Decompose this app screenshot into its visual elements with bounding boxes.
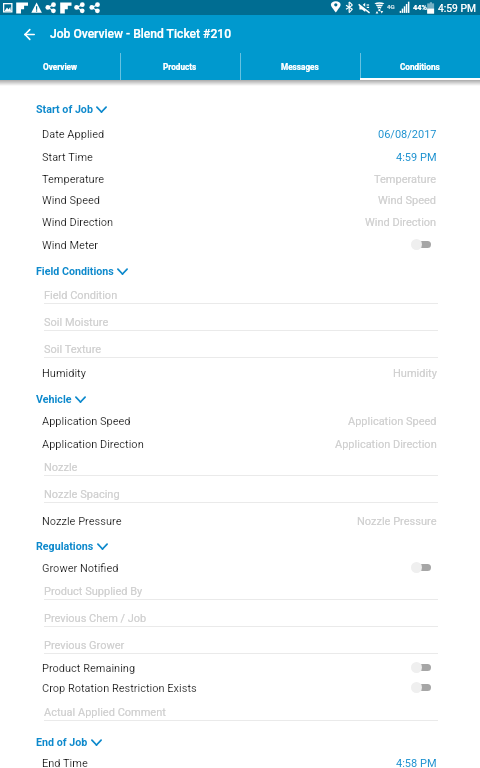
button[interactable]: Overview xyxy=(0,53,120,80)
staticText: Messages xyxy=(281,62,319,72)
button[interactable]: Crop Rotation Restriction Exists xyxy=(0,678,480,698)
button[interactable]: Product Supplied By xyxy=(0,581,480,601)
button[interactable]: Start of Job xyxy=(30,98,115,120)
staticText: Date Applied xyxy=(42,128,105,141)
staticText: End of Job xyxy=(36,736,88,749)
staticText: Product Supplied By xyxy=(44,585,143,598)
staticText: Grower Notified xyxy=(42,562,119,575)
staticText: Soil Moisture xyxy=(44,316,109,329)
staticText: Humidity xyxy=(393,367,437,380)
staticText: Wind Meter xyxy=(42,239,99,252)
staticText: Humidity xyxy=(42,367,86,380)
button[interactable]: Messages xyxy=(240,53,360,80)
button[interactable]: Regulations xyxy=(30,535,116,557)
staticText: 44% xyxy=(413,3,427,12)
staticText: Actual Applied Comment xyxy=(44,706,166,719)
button[interactable]: Actual Applied Comment xyxy=(0,702,480,722)
button[interactable]: Previous Grower xyxy=(0,635,480,655)
staticText: Field Condition xyxy=(44,289,118,302)
button[interactable]: Field Condition xyxy=(0,285,480,305)
staticText: Application Speed xyxy=(42,415,131,428)
button[interactable]: End Time xyxy=(0,753,480,768)
staticText: Products xyxy=(163,62,197,72)
button[interactable]: Nozzle Spacing xyxy=(0,484,480,504)
staticText: Field Conditions xyxy=(36,265,114,278)
staticText: Job Overview - Blend Ticket #210 xyxy=(50,27,232,41)
button[interactable]: Vehicle xyxy=(30,388,94,410)
staticText: Application Speed xyxy=(348,415,437,428)
staticText: Nozzle Spacing xyxy=(44,488,120,501)
staticText: Wind Speed xyxy=(42,194,101,207)
staticText: Previous Chem / Job xyxy=(44,612,147,625)
staticText: Temperature xyxy=(374,173,437,186)
button[interactable]: End of Job xyxy=(30,731,110,753)
staticText: Overview xyxy=(43,62,77,72)
button[interactable]: Wind Direction xyxy=(0,212,480,232)
staticText: Wind Speed xyxy=(378,194,437,207)
button[interactable]: Temperature xyxy=(0,169,480,189)
button[interactable]: Previous Chem / Job xyxy=(0,608,480,628)
staticText: Soil Texture xyxy=(44,343,102,356)
staticText: Product Remaining xyxy=(42,662,136,675)
staticText: 4:59 PM xyxy=(438,2,476,14)
staticText: 4:58 PM xyxy=(396,757,437,768)
button[interactable]: Products xyxy=(120,53,240,80)
button[interactable]: Wind Speed xyxy=(0,190,480,210)
staticText: End Time xyxy=(42,757,88,768)
button[interactable]: Humidity xyxy=(0,363,480,383)
button[interactable]: Start Time xyxy=(0,147,480,167)
staticText: Wind Direction xyxy=(365,216,437,229)
button[interactable]: Application Speed xyxy=(0,411,480,431)
staticText: Application Direction xyxy=(335,438,437,451)
staticText: Previous Grower xyxy=(44,639,125,652)
button[interactable]: Product Remaining xyxy=(0,658,480,678)
staticText: 4G xyxy=(387,3,395,10)
staticText: Wind Direction xyxy=(42,216,114,229)
staticText: Temperature xyxy=(42,173,105,186)
button[interactable]: Date Applied xyxy=(0,124,480,144)
staticText: Nozzle xyxy=(44,461,78,474)
staticText: Start of Job xyxy=(36,103,93,116)
button[interactable]: Soil Moisture xyxy=(0,312,480,332)
button[interactable]: Back xyxy=(16,21,42,47)
button[interactable]: Nozzle Pressure xyxy=(0,511,480,531)
staticText: Nozzle Pressure xyxy=(42,515,122,528)
staticText: 06/08/2017 xyxy=(378,128,437,141)
button[interactable]: Soil Texture xyxy=(0,339,480,359)
staticText: Start Time xyxy=(42,151,93,164)
button[interactable]: Wind Meter xyxy=(0,235,480,255)
button[interactable]: Conditions xyxy=(360,53,480,80)
staticText: Regulations xyxy=(36,540,94,553)
staticText: 4:59 PM xyxy=(396,151,437,164)
staticText: Nozzle Pressure xyxy=(357,515,437,528)
staticText: Vehicle xyxy=(36,393,72,406)
staticText: Crop Rotation Restriction Exists xyxy=(42,682,197,695)
button[interactable]: Nozzle xyxy=(0,457,480,477)
button[interactable]: Grower Notified xyxy=(0,558,480,578)
button[interactable]: Application Direction xyxy=(0,434,480,454)
staticText: Application Direction xyxy=(42,438,144,451)
button[interactable]: Field Conditions xyxy=(30,260,136,282)
staticText: Conditions xyxy=(400,62,440,72)
